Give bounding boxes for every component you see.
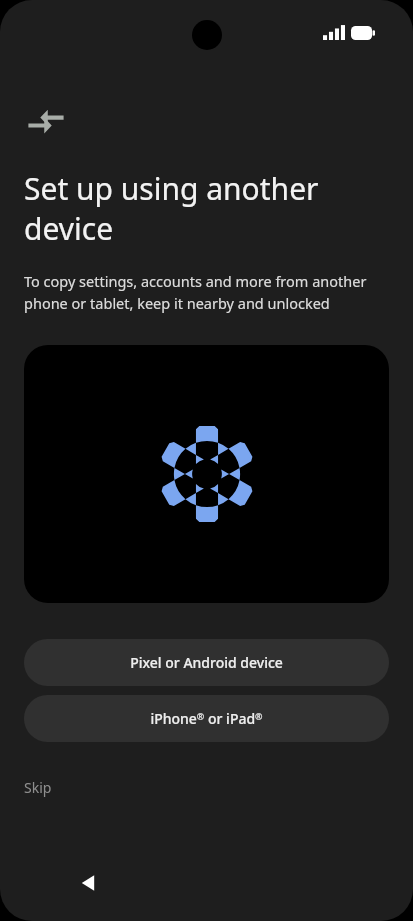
- other: Settings illustration: [159, 426, 255, 522]
- staticText: iPhone® or iPad®: [150, 709, 263, 728]
- other: Transfer data: [24, 100, 68, 144]
- button[interactable]: Pixel or Android device: [24, 639, 389, 686]
- button[interactable]: Back: [70, 865, 106, 901]
- staticText: To copy settings, accounts and more from…: [24, 271, 381, 313]
- staticText: Pixel or Android device: [130, 653, 283, 672]
- staticText: Skip: [24, 778, 52, 797]
- staticText: Set up using another device: [24, 168, 373, 249]
- button[interactable]: iPhone® or iPad®: [24, 695, 389, 742]
- button[interactable]: Skip: [16, 772, 60, 803]
